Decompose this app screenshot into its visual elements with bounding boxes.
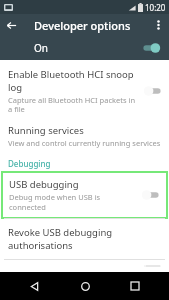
button[interactable]: Home <box>68 272 102 300</box>
button[interactable]: Enable Bluetooth HCI snoop log <box>0 63 169 119</box>
button[interactable]: Navigate up <box>0 14 22 36</box>
staticText: Running services <box>8 124 84 137</box>
staticText: Developer options <box>34 18 131 33</box>
button[interactable]: Revoke USB debugging authorisations <box>0 219 169 259</box>
button[interactable]: Recent apps <box>118 272 152 300</box>
staticText: Debugging <box>8 158 51 169</box>
button[interactable]: Running services <box>0 119 169 153</box>
staticText: 10:20 <box>145 2 166 13</box>
button[interactable]: More options <box>147 14 169 36</box>
button[interactable]: On <box>0 36 169 60</box>
button[interactable]: Back <box>17 272 51 300</box>
staticText: Debug mode when USB is connected <box>9 192 137 212</box>
staticText: Enable Bluetooth HCI snoop log <box>8 68 139 94</box>
staticText: View and control currently running servi… <box>8 138 161 148</box>
staticText: USB debugging <box>9 178 79 191</box>
staticText: Capture all Bluetooth HCI packets in a f… <box>8 95 139 114</box>
button[interactable]: USB debugging <box>2 172 167 218</box>
staticText: Revoke USB debugging authorisations <box>8 226 163 252</box>
staticText: On <box>34 41 48 55</box>
